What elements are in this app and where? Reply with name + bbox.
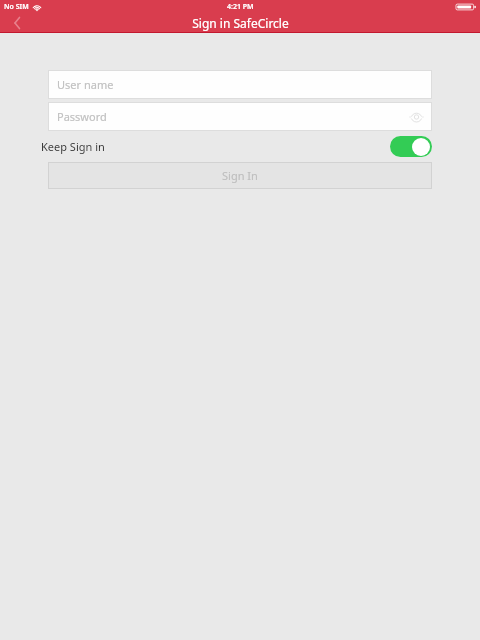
button[interactable]: Keep Sign in xyxy=(48,135,432,158)
button[interactable]: Sign In xyxy=(48,162,432,189)
staticText: No SIM xyxy=(4,2,29,12)
button[interactable]: Keep Sign in toggle xyxy=(390,136,432,157)
staticText: Sign In xyxy=(222,168,258,183)
staticText: Sign in SafeCircle xyxy=(192,15,289,31)
button[interactable]: User name xyxy=(48,70,432,99)
staticText: Keep Sign in xyxy=(41,139,105,154)
staticText: Password xyxy=(57,109,107,124)
button[interactable]: Back xyxy=(0,13,34,33)
button[interactable]: Show password xyxy=(406,107,426,127)
button[interactable]: Password xyxy=(48,102,432,131)
staticText: 4:21 PM xyxy=(227,2,254,12)
staticText: User name xyxy=(57,77,114,92)
